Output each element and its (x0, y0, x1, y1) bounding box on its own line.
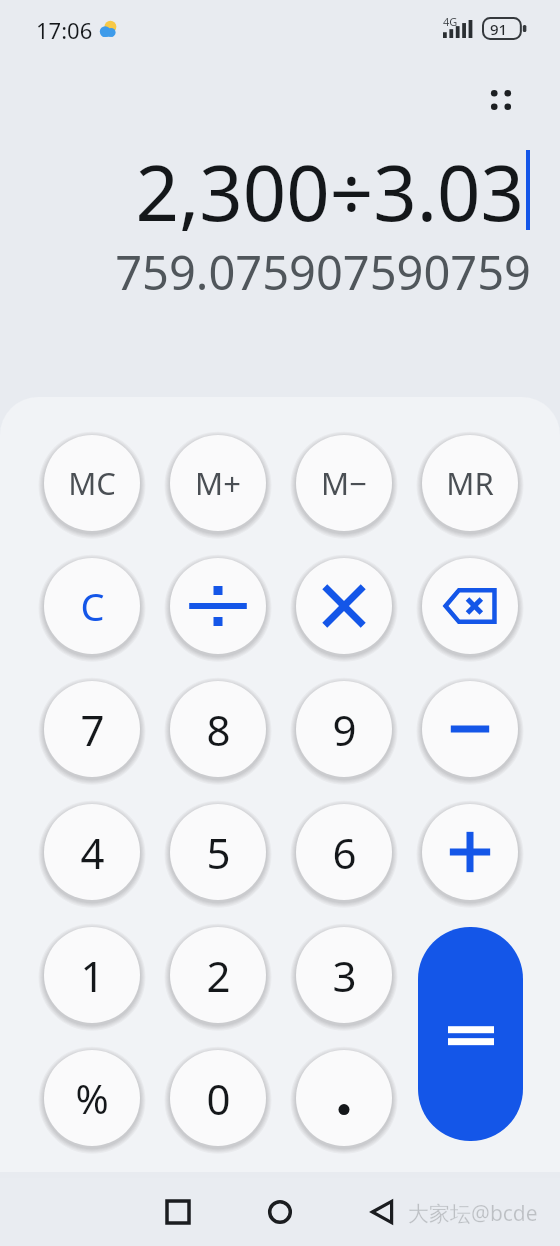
staticText: 1 (80, 947, 105, 1004)
button[interactable]: Plus (422, 804, 518, 900)
staticText: 91 (490, 19, 508, 39)
button[interactable]: C (44, 558, 140, 654)
button[interactable]: 1 (44, 927, 140, 1023)
staticText: M+ (195, 462, 241, 504)
button[interactable]: M− (296, 435, 392, 531)
button[interactable]: History (473, 72, 529, 128)
button[interactable]: M+ (170, 435, 266, 531)
staticText: M− (321, 462, 367, 504)
staticText: 0 (206, 1070, 231, 1127)
staticText: MC (68, 462, 116, 504)
staticText: 5 (206, 824, 231, 881)
button[interactable]: Equals (418, 927, 523, 1141)
staticText: 2,300÷3.03 (135, 140, 524, 240)
button[interactable]: Minus (422, 681, 518, 777)
staticText: 9 (332, 701, 357, 758)
button[interactable]: 2 (170, 927, 266, 1023)
button[interactable]: 0 (170, 1050, 266, 1146)
staticText: 6 (332, 824, 357, 881)
button[interactable]: Home (230, 1178, 330, 1246)
button[interactable]: 7 (44, 681, 140, 777)
button[interactable]: Multiply (296, 558, 392, 654)
staticText: 4G (443, 14, 458, 29)
button[interactable]: 9 (296, 681, 392, 777)
button[interactable]: MR (422, 435, 518, 531)
staticText: MR (446, 462, 494, 504)
staticText: C (80, 580, 105, 632)
button[interactable]: Decimal point (296, 1050, 392, 1146)
button[interactable]: Back (332, 1178, 432, 1246)
staticText: 3 (332, 947, 357, 1004)
button[interactable]: 4 (44, 804, 140, 900)
staticText: % (75, 1071, 109, 1125)
button[interactable]: Recents (128, 1178, 228, 1246)
staticText: 2 (206, 947, 231, 1004)
button[interactable]: Backspace (422, 558, 518, 654)
button[interactable]: Divide (170, 558, 266, 654)
staticText: 8 (206, 701, 231, 758)
button[interactable]: 8 (170, 681, 266, 777)
button[interactable]: % (44, 1050, 140, 1146)
staticText: 4 (80, 824, 105, 881)
button[interactable]: 5 (170, 804, 266, 900)
staticText: 759.075907590759 (115, 240, 531, 298)
button[interactable]: 3 (296, 927, 392, 1023)
staticText: 大家坛@bcde (408, 1199, 538, 1228)
button[interactable]: 6 (296, 804, 392, 900)
staticText: 7 (80, 701, 105, 758)
staticText: 17:06 (36, 15, 93, 45)
button[interactable]: MC (44, 435, 140, 531)
